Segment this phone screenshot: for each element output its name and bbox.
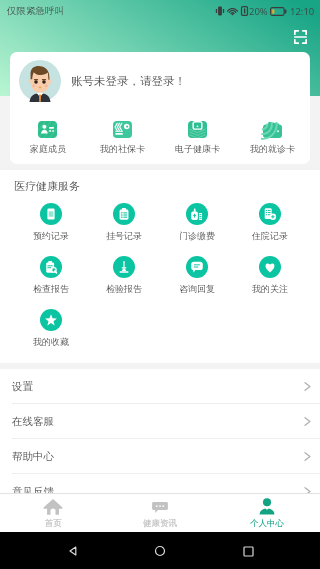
button[interactable]: 设置 <box>0 369 320 403</box>
button[interactable]: 检查报告 <box>14 256 87 294</box>
staticText: 我的社保卡 <box>100 143 145 154</box>
button[interactable]: Home <box>145 536 175 566</box>
button[interactable]: 我的就诊卡 <box>235 121 310 154</box>
button[interactable]: 账号未登录，请登录！ <box>10 52 310 110</box>
staticText: 我的关注 <box>252 283 288 294</box>
staticText: 挂号记录 <box>106 230 142 241</box>
staticText: 门诊缴费 <box>179 230 215 241</box>
staticText: 预约记录 <box>33 230 69 241</box>
staticText: 检查报告 <box>33 283 69 294</box>
button[interactable]: 帮助中心 <box>0 439 320 473</box>
staticText: 家庭成员 <box>30 143 66 154</box>
button[interactable]: 挂号记录 <box>87 203 160 241</box>
button[interactable]: 个人中心 <box>213 494 320 532</box>
button[interactable]: Scan QR code <box>288 25 312 49</box>
staticText: 设置 <box>12 380 33 393</box>
staticText: 电子健康卡 <box>175 143 220 154</box>
button[interactable]: 咨询回复 <box>160 256 233 294</box>
button[interactable]: 检验报告 <box>87 256 160 294</box>
button[interactable]: 家庭成员 <box>10 121 85 154</box>
staticText: 帮助中心 <box>12 450 54 463</box>
staticText: 住院记录 <box>252 230 288 241</box>
button[interactable]: 我的关注 <box>233 256 306 294</box>
button[interactable]: 首页 <box>0 494 106 532</box>
button[interactable]: 健康资讯 <box>106 494 213 532</box>
staticText: 首页 <box>45 518 62 529</box>
staticText: 健康资讯 <box>143 518 177 529</box>
staticText: 意见反馈 <box>12 485 54 498</box>
staticText: 在线客服 <box>12 415 54 428</box>
button[interactable]: 住院记录 <box>233 203 306 241</box>
staticText: 12:10 <box>290 5 315 18</box>
staticText: 检验报告 <box>106 283 142 294</box>
button[interactable]: 电子健康卡 <box>160 121 235 154</box>
button[interactable]: 意见反馈 <box>0 474 320 508</box>
staticText: 20% <box>249 5 268 18</box>
staticText: 仅限紧急呼叫 <box>7 5 64 17</box>
staticText: 我的收藏 <box>33 336 69 347</box>
staticText: 个人中心 <box>250 518 284 529</box>
staticText: 医疗健康服务 <box>14 179 80 193</box>
button[interactable]: 在线客服 <box>0 404 320 438</box>
button[interactable]: Back <box>58 536 88 566</box>
button[interactable]: 门诊缴费 <box>160 203 233 241</box>
button[interactable]: 我的社保卡 <box>85 121 160 154</box>
button[interactable]: Recent apps <box>233 536 263 566</box>
staticText: 咨询回复 <box>179 283 215 294</box>
staticText: 我的就诊卡 <box>250 143 295 154</box>
button[interactable]: 预约记录 <box>14 203 87 241</box>
button[interactable]: 我的收藏 <box>14 309 87 347</box>
staticText: 账号未登录，请登录！ <box>71 74 186 88</box>
